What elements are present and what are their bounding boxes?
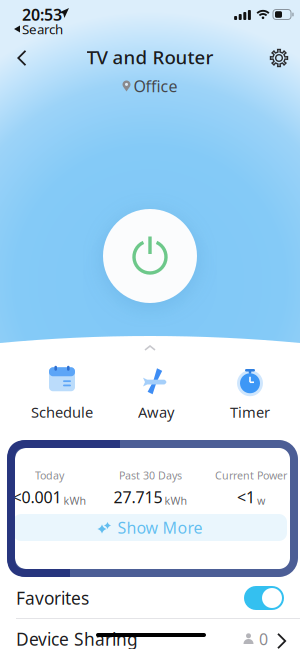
staticText: 27.715 [113,486,162,508]
staticText: kWh [164,493,187,508]
staticText: <0.001 [12,486,61,508]
staticText: Away [138,402,174,422]
staticText: Schedule [31,402,93,422]
staticText: Office [133,75,177,97]
staticText: Search [22,20,63,38]
button[interactable]: Back [2,40,42,76]
staticText: Device Sharing [16,627,138,649]
button[interactable]: Favorites [0,578,300,618]
staticText: Show More [117,517,202,538]
button[interactable]: Settings [259,40,299,76]
button[interactable]: Device Sharing [0,619,300,649]
staticText: TV and Router [86,45,213,69]
staticText: w [257,493,265,508]
staticText: 0 [259,628,268,649]
button[interactable]: Away [109,367,203,421]
staticText: <1 [237,486,255,508]
button[interactable]: Show More [13,514,287,541]
button[interactable]: Schedule [15,367,109,421]
button[interactable]: Timer [203,367,297,421]
staticText: Current Power [215,468,287,482]
button[interactable]: Power [103,209,197,303]
staticText: Favorites [16,586,89,609]
staticText: Past 30 Days [119,468,182,482]
staticText: Timer [230,402,270,422]
staticText: kWh [63,493,86,508]
staticText: 20:53 [22,4,62,25]
staticText: Today [35,468,64,482]
